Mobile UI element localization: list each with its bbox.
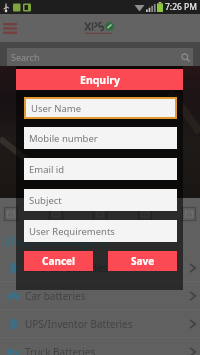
staticText: Cancel: [42, 254, 76, 268]
staticText: User Requirements: [29, 225, 115, 238]
button[interactable]: Subject: [24, 189, 177, 211]
button[interactable]: Menu: [3, 23, 17, 34]
staticText: Enquiry: [80, 73, 120, 87]
staticText: Shop by Category: [4, 233, 109, 249]
button[interactable]: Social link: [138, 207, 152, 221]
button[interactable]: Social link: [93, 207, 107, 221]
button[interactable]: UPS/Inventor Batteries: [0, 310, 200, 337]
staticText: Truck Batteries: [25, 345, 96, 355]
button[interactable]: Social link: [49, 207, 63, 221]
button[interactable]: User Requirements: [24, 220, 177, 242]
staticText: Email id: [29, 163, 65, 176]
button[interactable]: Email id: [24, 158, 177, 180]
button[interactable]: Save: [108, 251, 177, 271]
button[interactable]: Cancel: [24, 251, 93, 271]
button[interactable]: Social link: [4, 207, 18, 221]
button[interactable]: Mobile number: [24, 127, 177, 149]
staticText: Search: [11, 51, 40, 63]
button[interactable]: Social link: [182, 207, 196, 221]
button[interactable]: Car batteries: [0, 282, 200, 309]
button[interactable]: Truck Batteries: [0, 338, 200, 355]
staticText: Car batteries: [25, 289, 86, 303]
staticText: Subject: [29, 194, 62, 207]
staticText: User Name: [31, 102, 82, 115]
staticText: Save: [131, 254, 155, 268]
button[interactable]: Search: [7, 48, 193, 66]
staticText: UPS/Inventor Batteries: [25, 317, 133, 331]
other: Search: [181, 53, 190, 62]
button[interactable]: User Name: [26, 99, 175, 117]
staticText: 7:26 PM: [165, 1, 197, 13]
staticText: Mobile number: [29, 132, 98, 145]
staticText: Inverter Batteries: [25, 261, 108, 275]
button[interactable]: Inverter Batteries: [0, 254, 200, 281]
button[interactable]: Enquiry: [16, 69, 183, 90]
